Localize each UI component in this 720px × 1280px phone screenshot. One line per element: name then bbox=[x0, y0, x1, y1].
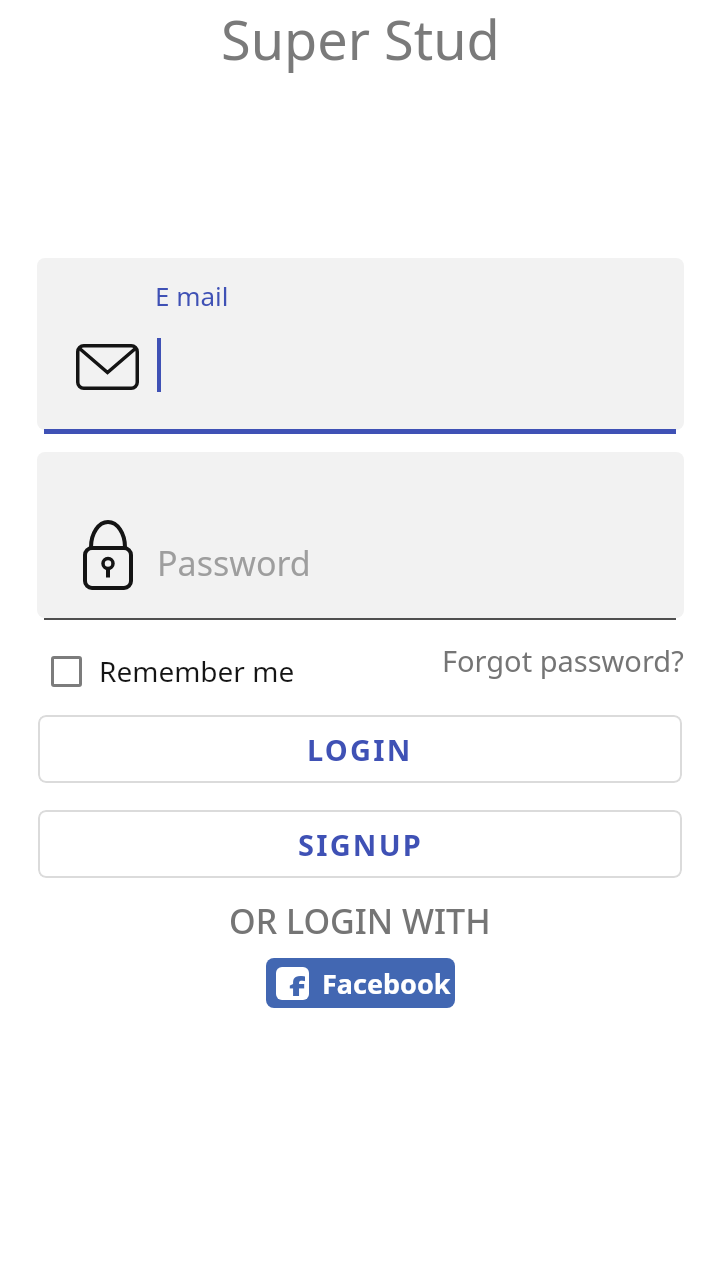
button[interactable]: Forgot password? bbox=[442, 641, 684, 680]
staticText: LOGIN bbox=[307, 730, 413, 769]
staticText: E mail bbox=[155, 278, 229, 313]
button[interactable] bbox=[51, 656, 82, 687]
button[interactable]: Password bbox=[37, 452, 684, 618]
staticText: Password bbox=[157, 540, 311, 586]
staticText: SIGNUP bbox=[298, 825, 423, 864]
staticText: Remember me bbox=[99, 652, 295, 690]
button[interactable]: LOGIN bbox=[38, 715, 682, 783]
staticText: Super Stud bbox=[221, 2, 500, 76]
staticText: f bbox=[289, 967, 305, 996]
staticText: Facebook bbox=[322, 965, 451, 1002]
button[interactable]: f bbox=[266, 958, 455, 1008]
button[interactable]: E mail bbox=[37, 258, 684, 430]
button[interactable]: SIGNUP bbox=[38, 810, 682, 878]
staticText: OR LOGIN WITH bbox=[229, 898, 491, 944]
